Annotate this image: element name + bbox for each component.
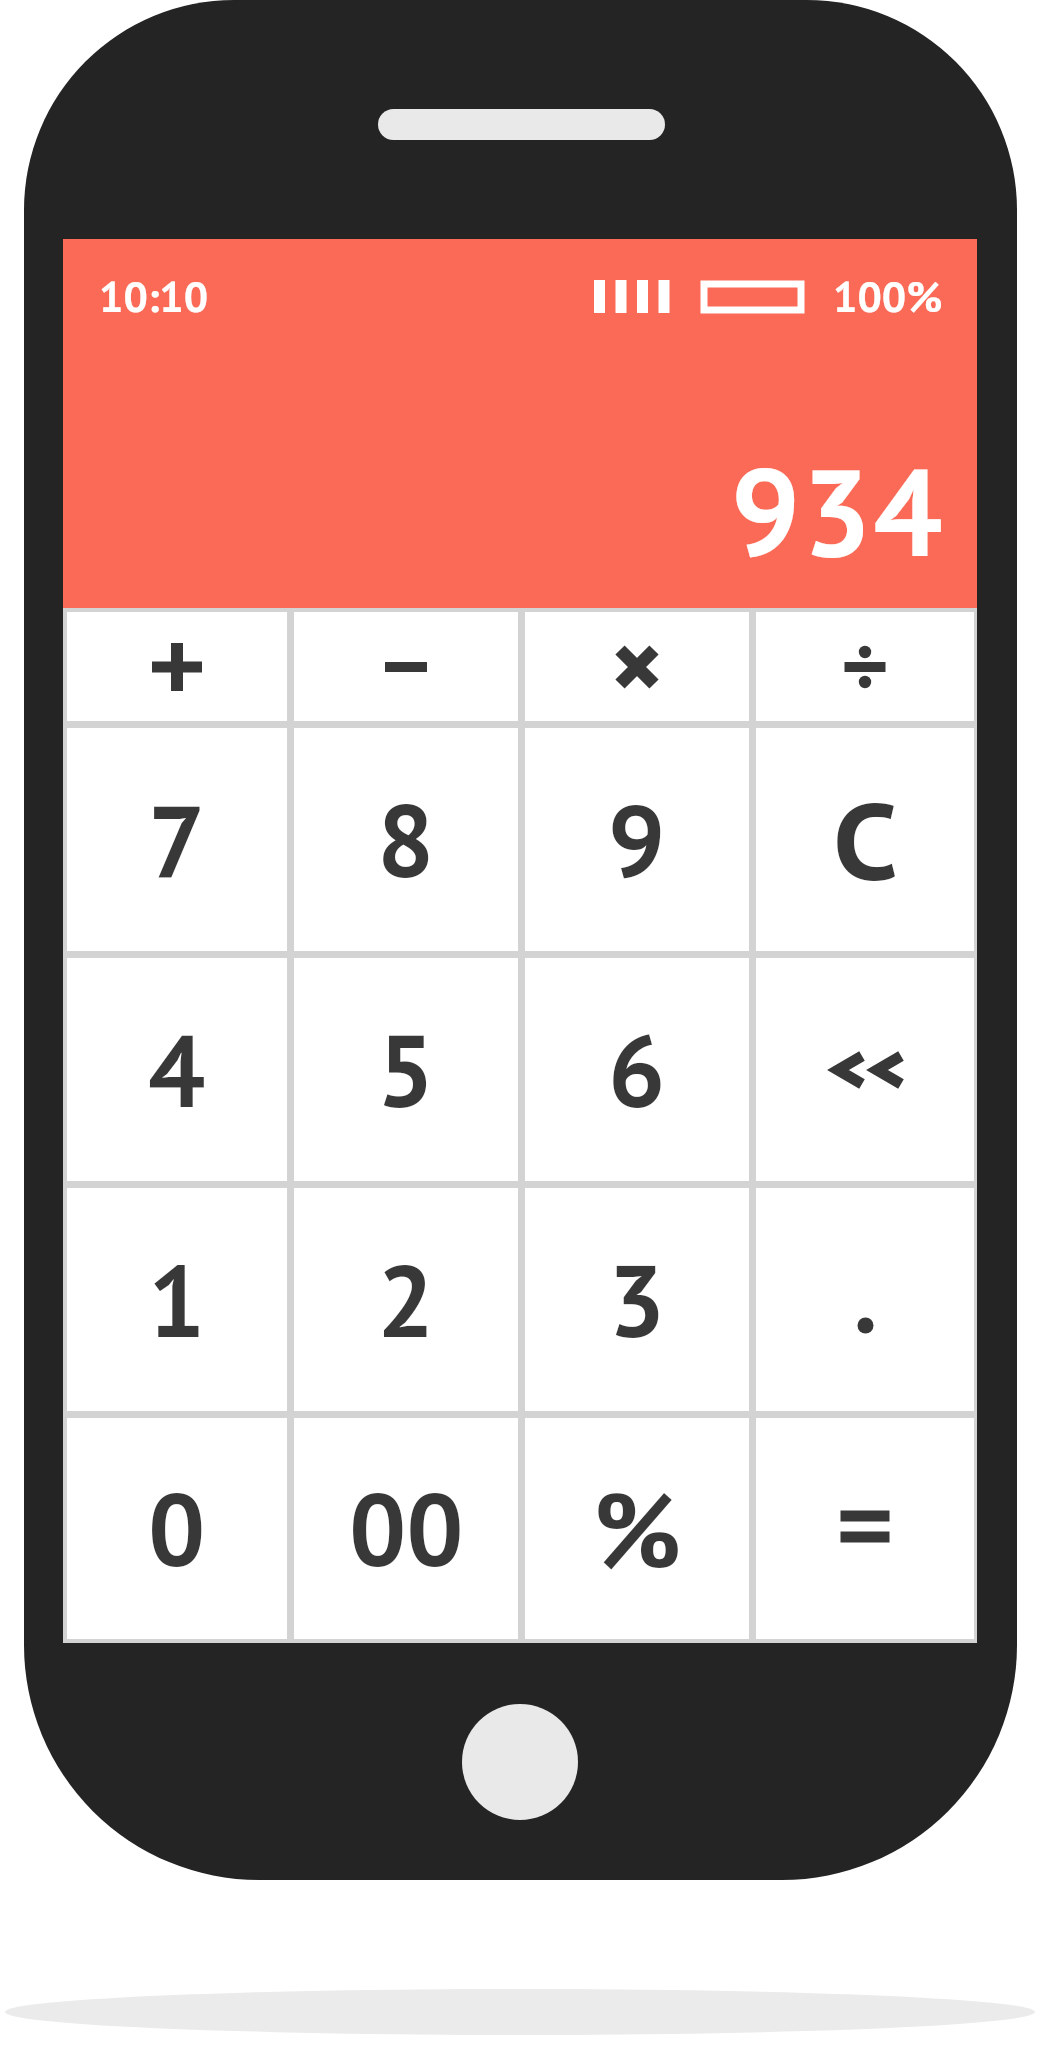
button[interactable] [294, 612, 518, 721]
staticText: 3 [608, 1234, 666, 1365]
staticText: 6 [608, 1004, 666, 1135]
button[interactable]: 7 [67, 728, 287, 951]
staticText: 5 [377, 1004, 435, 1135]
button[interactable]: 2 [294, 1188, 518, 1411]
staticText: 10:10 [99, 268, 209, 324]
staticText: 0 [148, 1463, 206, 1594]
button[interactable] [756, 958, 974, 1181]
staticText: 4 [148, 1004, 206, 1135]
staticText: C [833, 771, 898, 909]
button[interactable]: 00 [294, 1418, 518, 1639]
staticText: 9 [608, 774, 666, 905]
button[interactable]: 3 [525, 1188, 749, 1411]
staticText: 934 [731, 432, 945, 590]
button[interactable]: 9 [525, 728, 749, 951]
staticText: % [593, 1461, 682, 1597]
staticText: 2 [377, 1234, 435, 1365]
staticText: 8 [377, 774, 435, 905]
button[interactable] [63, 239, 977, 608]
button[interactable]: 6 [525, 958, 749, 1181]
button[interactable] [756, 612, 974, 721]
button[interactable]: 8 [294, 728, 518, 951]
button[interactable] [462, 1704, 578, 1820]
button[interactable]: 0 [67, 1418, 287, 1639]
button[interactable] [67, 612, 287, 721]
staticText: 00 [349, 1463, 464, 1594]
staticText: 100% [833, 268, 943, 324]
button[interactable]: 5 [294, 958, 518, 1181]
button[interactable]: 4 [67, 958, 287, 1181]
button[interactable]: 1 [67, 1188, 287, 1411]
button[interactable] [756, 1418, 974, 1639]
button[interactable]: % [525, 1418, 749, 1639]
staticText: 7 [148, 774, 206, 905]
button[interactable] [756, 1188, 974, 1411]
button[interactable] [525, 612, 749, 721]
button[interactable]: C [756, 728, 974, 951]
staticText: 1 [148, 1234, 206, 1365]
